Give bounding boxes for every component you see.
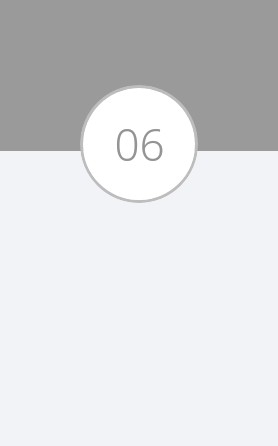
button[interactable]: Profile avatar, 06 xyxy=(80,85,198,203)
staticText: 06 xyxy=(114,114,165,174)
